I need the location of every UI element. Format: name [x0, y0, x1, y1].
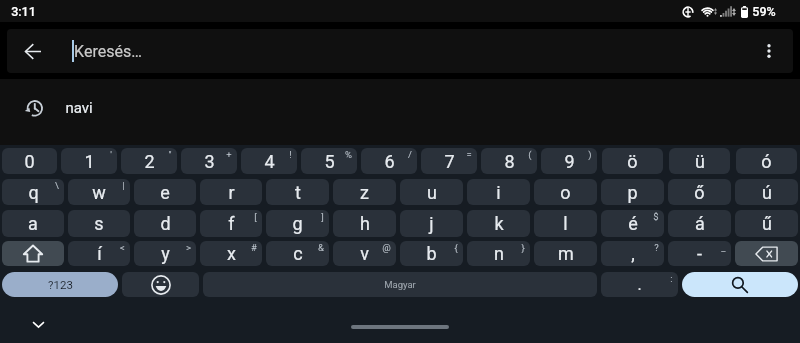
button[interactable]: backspace [735, 241, 798, 266]
button[interactable]: 8 [481, 148, 537, 174]
staticText: u [427, 182, 437, 203]
staticText: $ [653, 211, 659, 222]
staticText: 1 [84, 151, 95, 172]
staticText: 0 [24, 151, 35, 172]
button[interactable]: emoji [122, 272, 199, 297]
button[interactable]: ű [735, 210, 798, 237]
staticText: , [631, 243, 635, 264]
staticText: ] [321, 211, 324, 222]
button[interactable]: z [333, 179, 396, 205]
staticText: s [94, 213, 104, 234]
button[interactable]: j [400, 210, 463, 237]
button[interactable]: v [333, 241, 396, 266]
staticText: - [697, 243, 702, 264]
staticText: t [295, 182, 301, 203]
staticText: 59% [752, 4, 776, 19]
staticText: b [426, 243, 437, 264]
button[interactable]: e [134, 179, 196, 205]
button[interactable]: 4 [241, 148, 297, 174]
button[interactable]: t [266, 179, 329, 205]
button[interactable]: ó [736, 148, 797, 174]
button[interactable]: l [534, 210, 597, 237]
staticText: ( [528, 149, 532, 160]
staticText: í [97, 243, 102, 264]
button[interactable]: ú [735, 179, 798, 205]
button[interactable]: Hide keyboard [23, 309, 53, 339]
button[interactable]: ö [602, 148, 663, 174]
staticText: = [466, 149, 472, 160]
staticText: 8 [504, 151, 515, 172]
button[interactable]: , [601, 241, 664, 266]
staticText: ú [762, 182, 772, 203]
staticText: ' [110, 149, 112, 160]
staticText: i [496, 182, 501, 203]
staticText: Keresés… [74, 42, 142, 61]
button[interactable]: o [534, 179, 597, 205]
button[interactable]: navi [0, 86, 800, 130]
button[interactable]: a [2, 210, 64, 237]
staticText: 3:11 [11, 4, 36, 19]
button[interactable]: i [467, 179, 530, 205]
button[interactable]: ?123 [2, 272, 118, 297]
staticText: > [186, 242, 191, 253]
button[interactable]: 5 [301, 148, 357, 174]
button[interactable]: u [400, 179, 463, 205]
staticText: ! [289, 149, 292, 160]
staticText: { [454, 242, 458, 253]
staticText: á [695, 213, 705, 234]
staticText: @ [382, 242, 391, 253]
button[interactable]: é [601, 210, 664, 237]
button[interactable]: b [400, 241, 463, 266]
staticText: # [251, 242, 257, 253]
button[interactable]: 9 [541, 148, 597, 174]
button[interactable]: k [467, 210, 530, 237]
button[interactable]: s [68, 210, 130, 237]
staticText: navi [65, 99, 93, 117]
button[interactable]: search [682, 272, 798, 297]
button[interactable]: í [68, 241, 130, 266]
button[interactable]: p [601, 179, 664, 205]
staticText: 4 [264, 151, 275, 172]
staticText: a [28, 213, 38, 234]
button[interactable]: ő [668, 179, 731, 205]
staticText: 2 [144, 151, 155, 172]
button[interactable]: More options [752, 34, 786, 68]
button[interactable]: ü [669, 148, 730, 174]
button[interactable]: shift [2, 241, 64, 266]
button[interactable]: c [266, 241, 329, 266]
staticText: " [168, 149, 172, 160]
staticText: r [228, 182, 235, 203]
button[interactable]: 1 [61, 148, 117, 174]
button[interactable]: 6 [361, 148, 417, 174]
button[interactable]: á [668, 210, 731, 237]
button[interactable]: r [200, 179, 262, 205]
staticText: z [360, 182, 369, 203]
button[interactable]: q [2, 179, 64, 205]
button[interactable]: m [534, 241, 597, 266]
button[interactable]: f [200, 210, 262, 237]
button[interactable]: h [333, 210, 396, 237]
button[interactable]: n [467, 241, 530, 266]
button[interactable]: 0 [2, 148, 57, 174]
button[interactable]: 3 [181, 148, 237, 174]
staticText: ? [654, 242, 659, 253]
button[interactable]: Magyar [203, 272, 597, 297]
staticText: n [494, 243, 504, 264]
staticText: ű [762, 213, 772, 234]
button[interactable]: g [266, 210, 329, 237]
staticText: l [563, 213, 568, 234]
staticText: & [318, 242, 324, 253]
button[interactable]: d [134, 210, 196, 237]
button[interactable]: 7 [421, 148, 477, 174]
button[interactable]: . [601, 272, 678, 297]
staticText: % [345, 149, 352, 160]
staticText: x [227, 243, 236, 264]
button[interactable]: w [68, 179, 130, 205]
staticText: ?123 [48, 278, 73, 291]
staticText: 9 [564, 151, 575, 172]
button[interactable]: - [668, 241, 731, 266]
button[interactable]: Back [14, 32, 52, 70]
button[interactable]: 2 [121, 148, 177, 174]
button[interactable]: x [200, 241, 262, 266]
button[interactable]: y [134, 241, 196, 266]
